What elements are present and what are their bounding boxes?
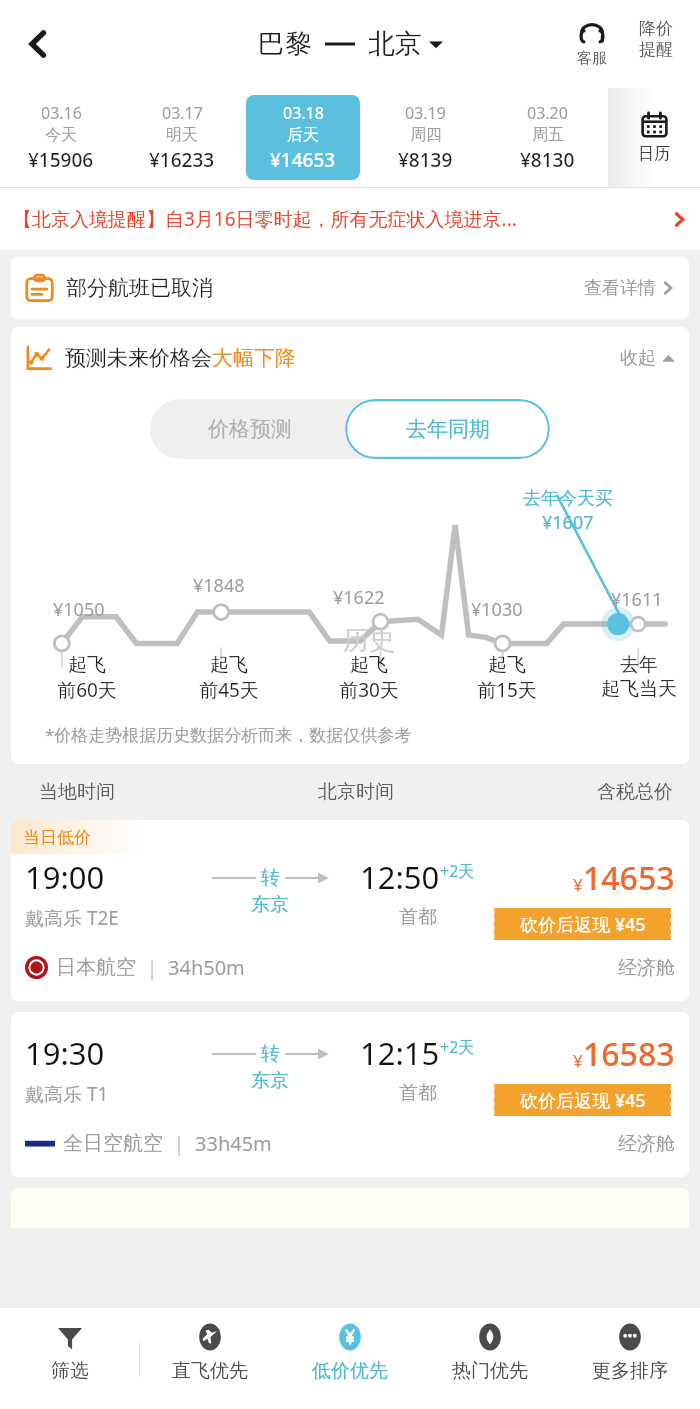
staticText: 查看详情 <box>584 277 656 300</box>
button[interactable]: 03.16 <box>4 95 117 180</box>
button[interactable]: 直飞优先 <box>140 1308 280 1409</box>
staticText: 起飞当天 <box>601 677 677 701</box>
staticText: 16583 <box>583 1032 675 1076</box>
staticText: 19:00 <box>25 856 105 898</box>
staticText: 首都 <box>399 1081 437 1105</box>
staticText: ¥1611 <box>611 587 663 612</box>
staticText: 大幅下降 <box>212 345 296 371</box>
button[interactable]: 去年同期 <box>345 399 550 459</box>
staticText: 首都 <box>399 905 437 929</box>
staticText: 热门优先 <box>452 1359 528 1383</box>
button[interactable]: 低价优先 <box>280 1308 420 1409</box>
staticText: 提醒 <box>639 39 673 60</box>
staticText: 起飞 <box>350 653 388 677</box>
button[interactable]: 降价 <box>624 16 688 62</box>
staticText: 东京 <box>251 893 289 917</box>
staticText: 低价优先 <box>312 1359 388 1383</box>
button[interactable]: 03.17 <box>125 95 238 180</box>
staticText: ¥8130 <box>520 147 575 173</box>
button[interactable]: 巴黎 <box>258 27 443 61</box>
staticText: 直飞优先 <box>172 1359 248 1383</box>
staticText: ¥1848 <box>193 573 245 598</box>
staticText: 转 <box>261 1042 280 1066</box>
staticText: ¥1622 <box>333 585 385 610</box>
staticText: ¥ <box>573 873 583 896</box>
staticText: 巴黎 <box>258 27 312 61</box>
staticText: 19:30 <box>25 1032 105 1074</box>
staticText: 去年 <box>620 653 658 677</box>
staticText: ¥1030 <box>471 597 523 622</box>
staticText: 收起 <box>620 347 656 370</box>
button[interactable]: 03.20 <box>490 95 604 180</box>
staticText: 日历 <box>638 144 670 164</box>
staticText: 砍价后返现 ¥45 <box>520 1088 646 1113</box>
staticText: 【北京入境提醒】自3月16日零时起，所有无症状入境进京... <box>13 206 666 232</box>
staticText: 预测未来价格会 <box>65 345 212 371</box>
staticText: +2天 <box>440 1036 475 1058</box>
staticText: 日本航空 <box>56 955 136 980</box>
staticText: 起飞 <box>210 653 248 677</box>
staticText: 全日空航空 <box>63 1131 163 1156</box>
staticText: 价格预测 <box>208 416 292 442</box>
button[interactable]: Back <box>10 16 66 72</box>
staticText: 去年同期 <box>406 416 490 442</box>
staticText: 起飞 <box>488 653 526 677</box>
staticText: ¥8139 <box>398 147 453 173</box>
staticText: 砍价后返现 ¥45 <box>520 912 646 937</box>
staticText: 前30天 <box>339 677 399 703</box>
button[interactable]: 当日低价 <box>11 820 689 1001</box>
staticText: 明天 <box>166 125 198 145</box>
button[interactable]: 03.19 <box>368 95 482 180</box>
button[interactable]: 价格预测 <box>150 399 350 459</box>
staticText: 降价 <box>639 18 673 39</box>
button[interactable]: 更多排序 <box>560 1308 700 1409</box>
button[interactable]: 热门优先 <box>420 1308 560 1409</box>
staticText: 前15天 <box>477 677 537 703</box>
staticText: 戴高乐 T2E <box>25 905 119 931</box>
staticText: 北京时间 <box>318 780 394 804</box>
staticText: 转 <box>261 866 280 890</box>
staticText: 03.20 <box>527 102 568 124</box>
staticText: 客服 <box>577 49 607 68</box>
staticText: 03.19 <box>405 102 446 124</box>
button[interactable]: 19:30 <box>11 1012 689 1177</box>
staticText: *价格走势根据历史数据分析而来，数据仅供参考 <box>45 723 412 746</box>
staticText: 12:15 <box>360 1032 440 1074</box>
staticText: ¥16233 <box>149 147 215 173</box>
staticText: 今天 <box>45 125 77 145</box>
staticText: 当日低价 <box>23 827 91 848</box>
button[interactable]: 部分航班已取消 <box>11 257 689 319</box>
staticText: 周五 <box>532 125 564 145</box>
staticText: 历史 <box>343 624 395 657</box>
staticText: 戴高乐 T1 <box>25 1081 109 1107</box>
button[interactable]: 日历 <box>608 88 700 187</box>
button[interactable]: 03.18 <box>246 95 360 180</box>
staticText: 当地时间 <box>39 780 115 804</box>
staticText: 含税总价 <box>597 780 673 804</box>
staticText: 经济舱 <box>618 956 675 980</box>
staticText: 12:50 <box>360 856 440 898</box>
staticText: 03.16 <box>41 102 82 124</box>
staticText: 14653 <box>583 856 675 900</box>
staticText: 东京 <box>251 1069 289 1093</box>
staticText: ¥1050 <box>53 597 105 622</box>
staticText: ¥15906 <box>28 147 94 173</box>
staticText: | <box>136 954 168 981</box>
staticText: 03.18 <box>283 102 324 124</box>
staticText: 34h50m <box>168 954 245 981</box>
staticText: 起飞 <box>68 653 106 677</box>
staticText: 前45天 <box>199 677 259 703</box>
staticText: 前60天 <box>57 677 117 703</box>
staticText: 后天 <box>287 125 319 145</box>
staticText: 周四 <box>410 125 442 145</box>
button[interactable]: 客服 <box>560 16 624 72</box>
staticText: ¥14653 <box>270 147 336 173</box>
staticText: 北京 <box>368 27 422 61</box>
button[interactable]: 预测未来价格会 <box>11 327 689 389</box>
staticText: 部分航班已取消 <box>66 275 584 301</box>
staticText: 筛选 <box>51 1359 89 1383</box>
button[interactable]: 筛选 <box>0 1308 139 1409</box>
button[interactable]: 【北京入境提醒】自3月16日零时起，所有无症状入境进京... <box>0 188 700 250</box>
staticText: 去年今天买 <box>523 487 613 510</box>
staticText: 03.17 <box>162 102 203 124</box>
